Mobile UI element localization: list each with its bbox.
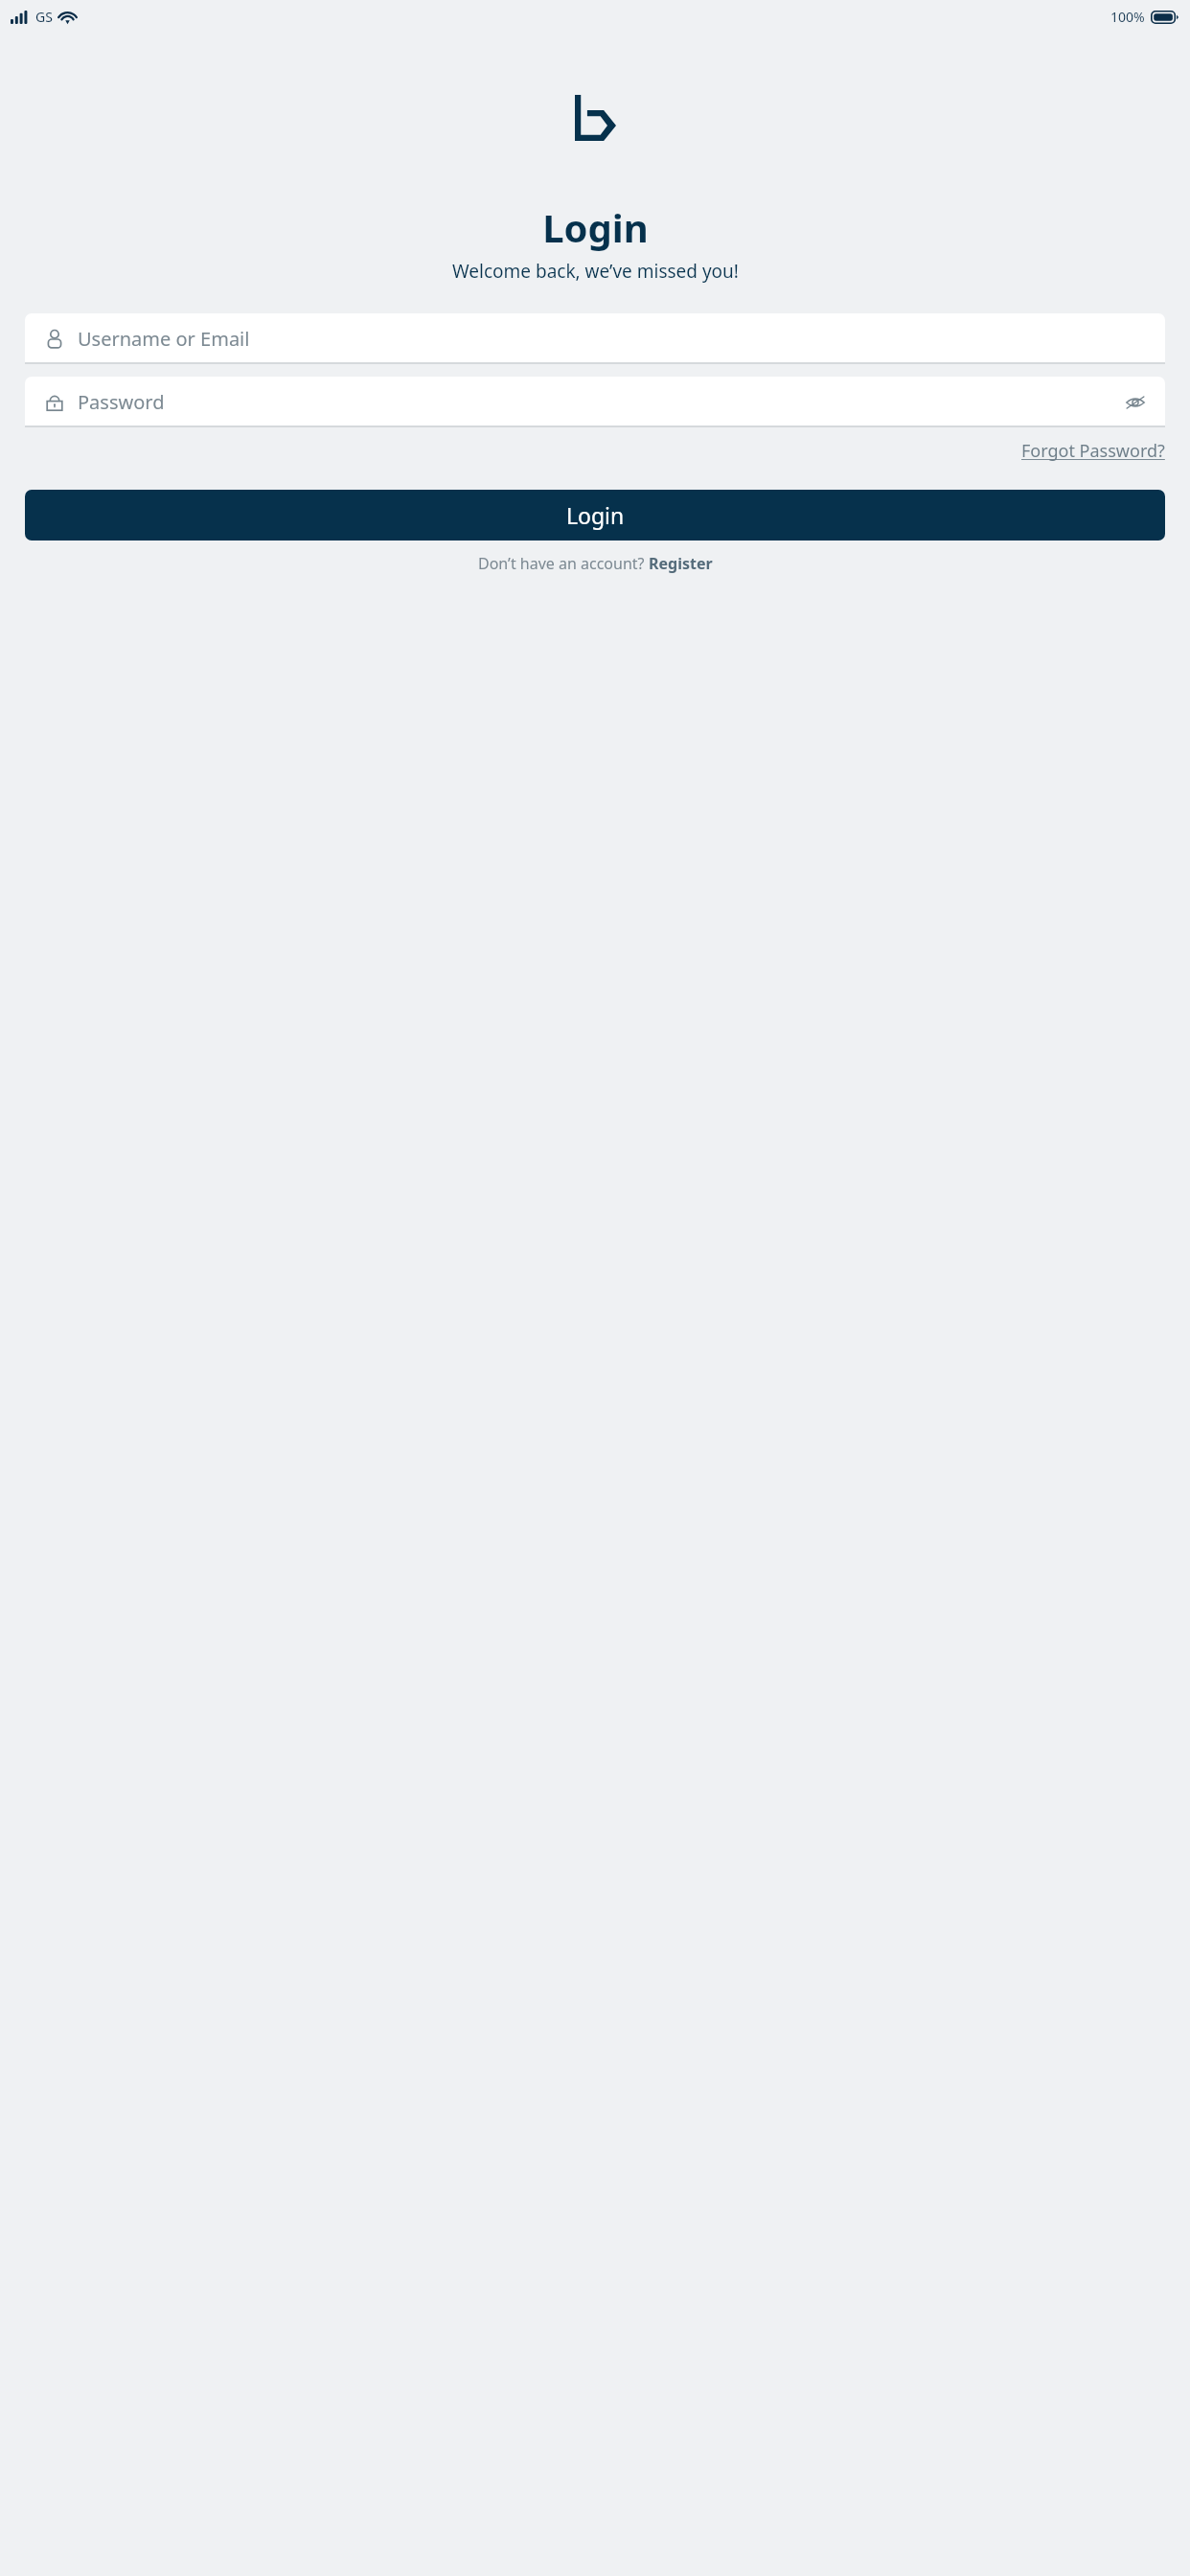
button[interactable]: Don’t have an account?: [0, 553, 1190, 574]
staticText: Don’t have an account?: [478, 553, 649, 574]
button[interactable]: Username or Email: [25, 313, 1165, 364]
staticText: Login: [542, 201, 649, 253]
button[interactable]: Forgot Password?: [1021, 437, 1165, 465]
staticText: Forgot Password?: [1021, 439, 1165, 463]
staticText: Welcome back, we’ve missed you!: [452, 259, 739, 284]
button[interactable]: Show password: [1123, 390, 1148, 415]
button[interactable]: Login: [25, 490, 1165, 540]
staticText: GS: [35, 8, 53, 26]
staticText: Login: [566, 500, 625, 530]
staticText: Password: [78, 389, 165, 415]
staticText: Register: [649, 553, 713, 574]
staticText: Username or Email: [78, 326, 250, 352]
button[interactable]: Password: [25, 377, 1165, 427]
staticText: 100%: [1110, 8, 1145, 26]
